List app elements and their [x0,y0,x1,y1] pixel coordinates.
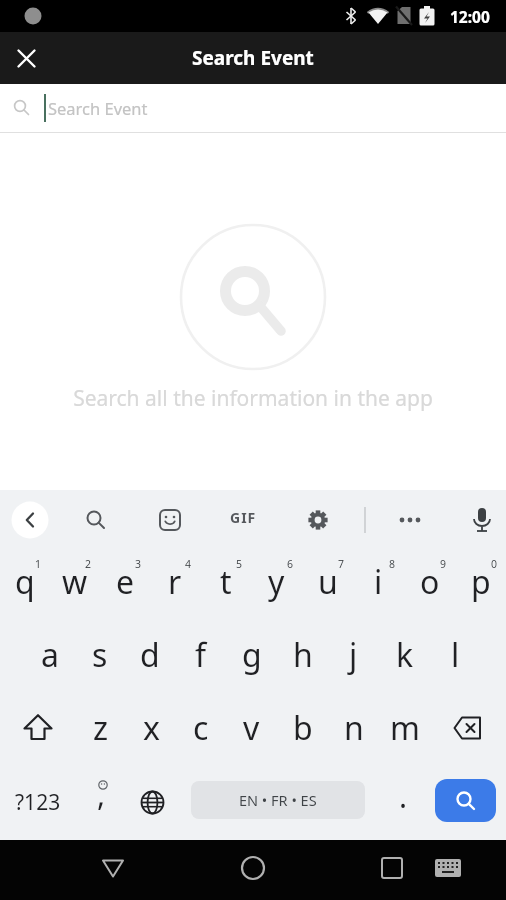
staticText: 7 [338,557,345,571]
button[interactable]: s [75,618,125,691]
button[interactable]: d [125,618,175,691]
button[interactable]: t [200,545,251,618]
staticText: Search Event [48,97,148,119]
staticText: 5 [236,557,243,571]
staticText: h [293,633,313,677]
button[interactable]: p [455,545,506,618]
button[interactable]: f [175,618,226,691]
button[interactable]: l [430,618,481,691]
button[interactable]: m [379,691,430,764]
staticText: t [220,560,232,604]
staticText: x [143,706,160,750]
staticText: 3 [135,557,142,571]
staticText: e [116,560,135,604]
staticText: 12:00 [450,6,490,27]
button[interactable]: r [150,545,200,618]
staticText: y [268,560,285,604]
button[interactable]: h [277,618,328,691]
staticText: . [399,776,408,817]
button[interactable] [368,846,416,894]
button[interactable]: v [226,691,277,764]
staticText: d [140,633,160,677]
button[interactable] [126,764,178,840]
button[interactable] [89,846,137,894]
button[interactable] [388,496,432,540]
staticText: 4 [185,557,192,571]
staticText: a [41,633,59,677]
button[interactable]: o [404,545,455,618]
button[interactable]: k [379,618,430,691]
staticText: , [97,774,106,815]
button[interactable]: ?123 [0,764,76,840]
staticText: r [168,560,182,604]
staticText: 2 [85,557,92,571]
button[interactable] [296,496,340,540]
staticText: q [15,560,35,604]
button[interactable] [74,496,118,540]
button[interactable]: i [353,545,404,618]
staticText: s [92,633,108,677]
staticText: 8 [389,557,396,571]
button[interactable]: . [378,764,428,840]
staticText: 9 [440,557,447,571]
button[interactable] [424,846,472,894]
staticText: g [242,633,262,677]
staticText: 6 [287,557,294,571]
button[interactable]: y [251,545,302,618]
button[interactable]: q [0,545,50,618]
staticText: w [62,560,88,604]
button[interactable]: n [328,691,379,764]
button[interactable]: z [76,691,126,764]
staticText: i [374,560,383,604]
button[interactable]: b [277,691,328,764]
staticText: 1 [35,557,42,571]
button[interactable]: EN • FR • ES [191,764,365,840]
button[interactable] [8,40,44,76]
staticText: p [471,560,491,604]
button[interactable]: j [328,618,379,691]
staticText: z [93,706,109,750]
button[interactable]: , [76,764,126,840]
staticText: ?123 [15,788,61,817]
staticText: Search Event [192,45,314,71]
staticText: c [193,706,209,750]
staticText: GIF [230,508,257,527]
button[interactable] [148,496,192,540]
button[interactable]: g [226,618,277,691]
staticText: o [420,560,440,604]
staticText: 0 [491,557,498,571]
button[interactable]: w [50,545,100,618]
staticText: EN • FR • ES [239,790,317,810]
button[interactable] [229,846,277,894]
button[interactable] [428,764,506,840]
button[interactable]: Search Event [0,84,506,132]
button[interactable] [0,691,76,764]
button[interactable]: u [302,545,353,618]
button[interactable] [460,496,504,540]
staticText: k [396,633,414,677]
staticText: f [195,633,207,677]
staticText: v [243,706,260,750]
staticText: b [293,706,313,750]
button[interactable]: c [176,691,226,764]
button[interactable] [221,496,265,540]
staticText: m [390,706,420,750]
button[interactable]: a [25,618,75,691]
staticText: j [349,633,358,677]
staticText: u [318,560,338,604]
button[interactable] [8,496,52,540]
button[interactable]: e [100,545,150,618]
staticText: l [451,633,460,677]
staticText: Search all the information in the app [0,384,506,413]
staticText: n [344,706,364,750]
button[interactable]: x [126,691,176,764]
button[interactable] [430,691,506,764]
